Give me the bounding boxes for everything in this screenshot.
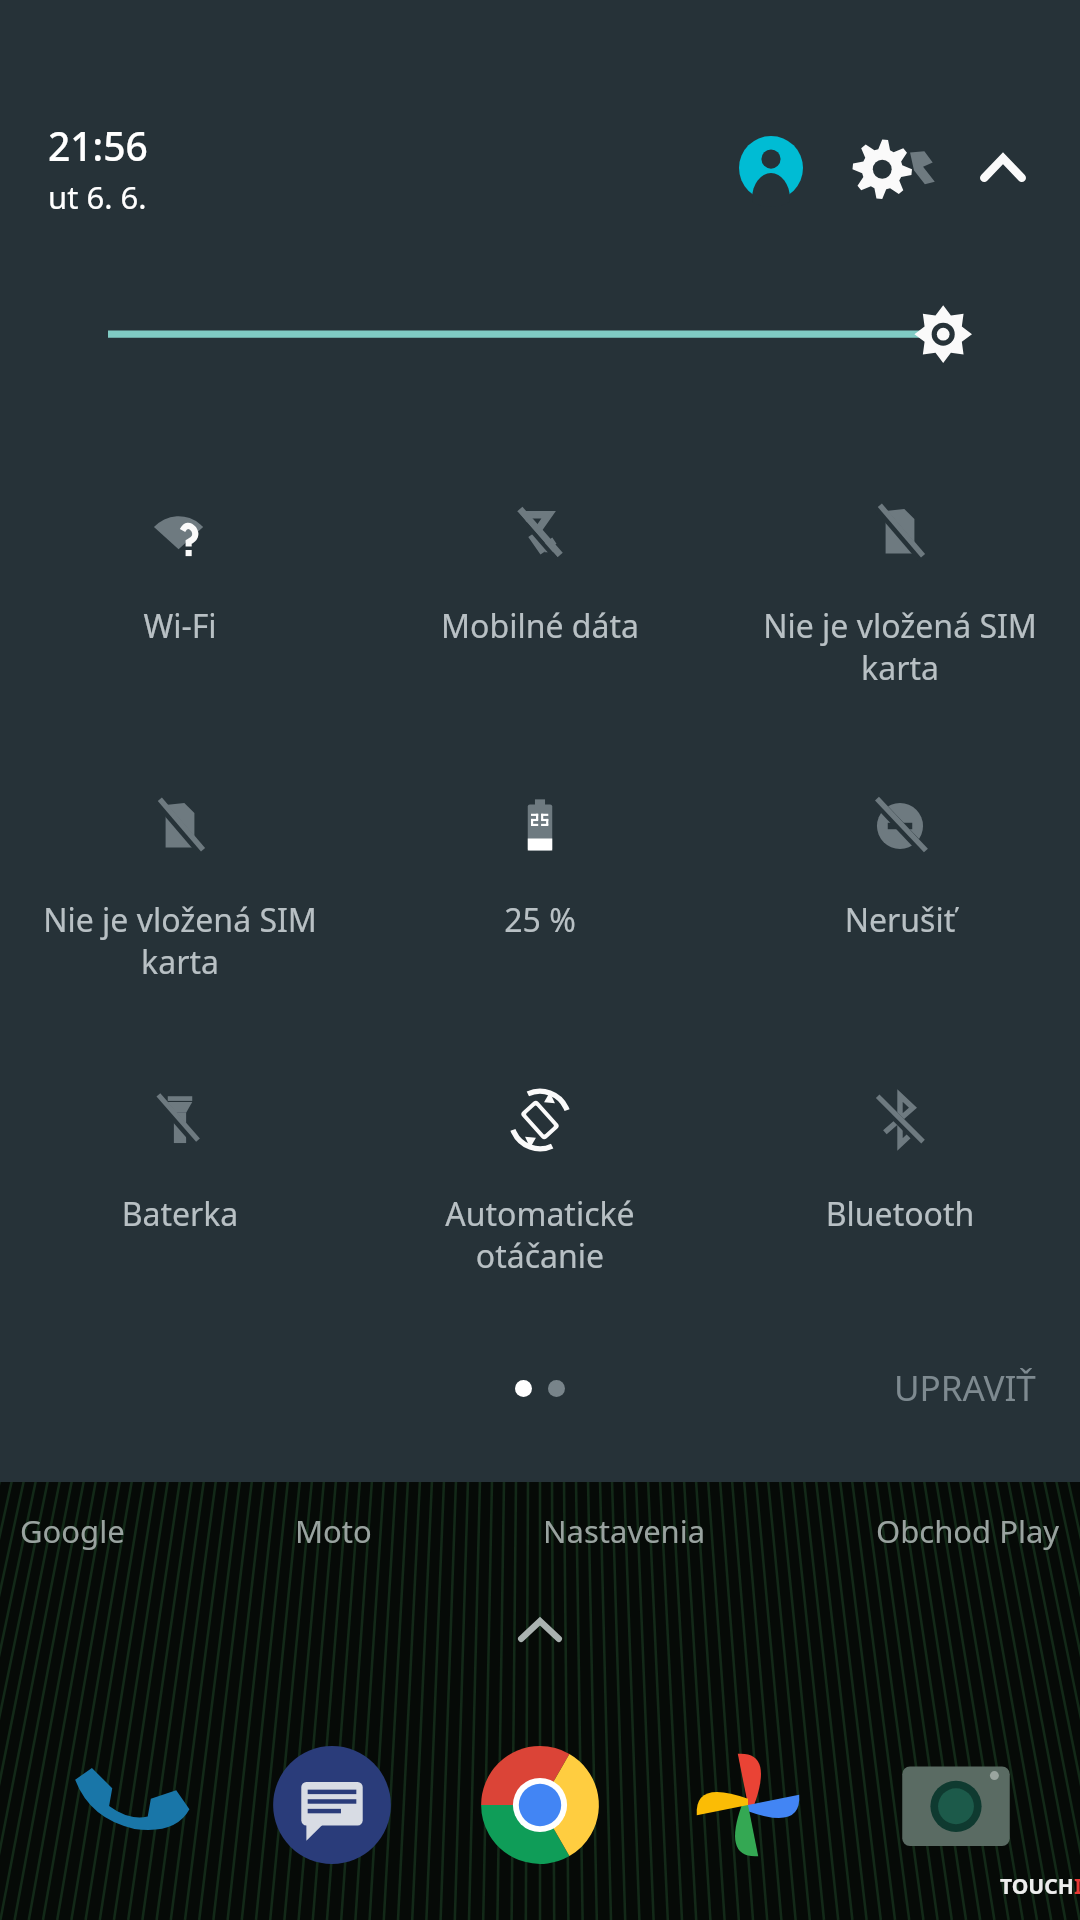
button[interactable]: Mobilné dáta [360, 482, 720, 714]
button[interactable]: UPRAVIŤ [884, 1356, 1046, 1420]
staticText: ut 6. 6. [48, 176, 147, 218]
staticText: Automatické otáčanie [374, 1192, 706, 1277]
button[interactable]: Photos [678, 1735, 818, 1875]
button[interactable]: Google [20, 1510, 125, 1552]
button[interactable]: 25 % [360, 776, 720, 1008]
staticText: TOUCH [1000, 1872, 1074, 1901]
button[interactable]: Obchod Play [876, 1510, 1060, 1552]
staticText: 21:56 [48, 119, 148, 172]
button[interactable]: Wi-Fi [0, 482, 360, 714]
button[interactable]: Automatické otáčanie [360, 1070, 720, 1302]
staticText: Wi-Fi [14, 604, 346, 648]
staticText: IT [1074, 1872, 1080, 1901]
button[interactable]: Nie je vložená SIM karta [720, 482, 1080, 714]
staticText: Nastavenia [543, 1510, 706, 1552]
button[interactable]: Brightness [0, 290, 1080, 386]
button[interactable]: Nie je vložená SIM karta [0, 776, 360, 1008]
staticText: Mobilné dáta [374, 604, 706, 648]
staticText: Bluetooth [734, 1192, 1066, 1236]
button[interactable]: All apps [500, 1590, 580, 1670]
staticText: Nie je vložená SIM karta [734, 604, 1066, 689]
staticText: UPRAVIŤ [894, 1364, 1036, 1412]
button[interactable]: Bluetooth [720, 1070, 1080, 1302]
button[interactable]: Nerušiť [720, 776, 1080, 1008]
staticText: Moto [295, 1510, 372, 1552]
staticText: 25 % [374, 898, 706, 942]
staticText: Nie je vložená SIM karta [14, 898, 346, 983]
staticText: Obchod Play [876, 1510, 1060, 1552]
button[interactable]: Moto [295, 1510, 372, 1552]
button[interactable]: Camera [886, 1735, 1026, 1875]
button[interactable]: Settings [848, 129, 944, 207]
button[interactable]: Collapse [966, 131, 1040, 205]
button[interactable]: Chrome [470, 1735, 610, 1875]
button[interactable]: User account [732, 129, 810, 207]
button[interactable]: Baterka [0, 1070, 360, 1302]
button[interactable]: Phone [54, 1735, 194, 1875]
staticText: Baterka [14, 1192, 346, 1236]
button[interactable]: Nastavenia [543, 1510, 706, 1552]
staticText: Google [20, 1510, 125, 1552]
button[interactable]: Messages [262, 1735, 402, 1875]
staticText: Nerušiť [734, 898, 1066, 942]
